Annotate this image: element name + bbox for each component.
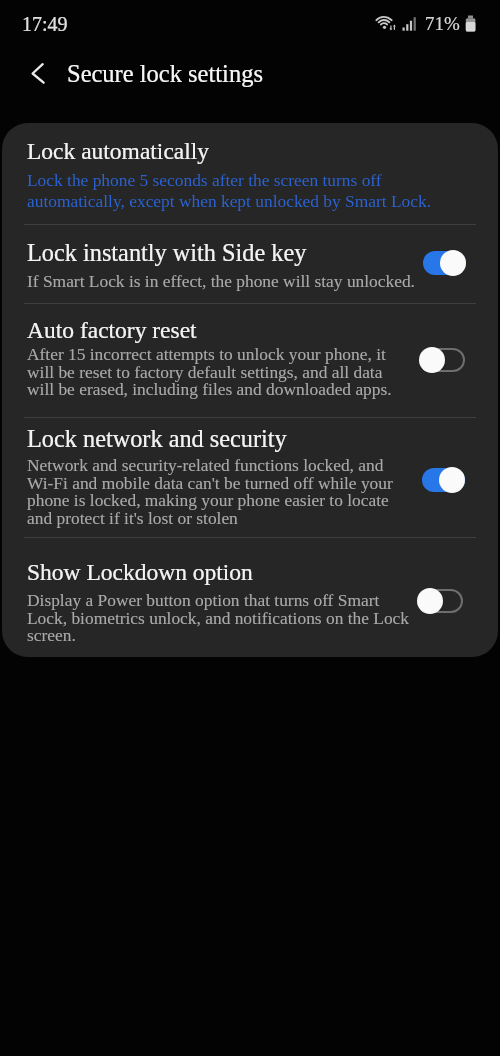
staticText: Display a Power button option that turns… bbox=[27, 590, 380, 609]
staticText: Lock network and security bbox=[27, 425, 287, 452]
staticText: screen. bbox=[27, 625, 76, 644]
staticText: will be erased, including files and down… bbox=[27, 379, 392, 398]
staticText: Show Lockdown option bbox=[27, 559, 253, 585]
staticText: After 15 incorrect attempts to unlock yo… bbox=[27, 344, 386, 363]
staticText: and protect if it's lost or stolen bbox=[27, 508, 238, 527]
staticText: phone is locked, making your phone easie… bbox=[27, 490, 389, 509]
staticText: 71% bbox=[425, 13, 460, 34]
staticText: 17:49 bbox=[22, 13, 68, 35]
staticText: Lock, biometrics unlock, and notificatio… bbox=[27, 608, 410, 627]
staticText: If Smart Lock is in effect, the phone wi… bbox=[27, 271, 415, 290]
staticText: Lock automatically bbox=[27, 138, 210, 164]
staticText: Auto factory reset bbox=[27, 317, 197, 343]
staticText: Network and security-related functions l… bbox=[27, 455, 384, 474]
staticText: Lock the phone 5 seconds after the scree… bbox=[27, 170, 382, 189]
staticText: Lock instantly with Side key bbox=[27, 239, 307, 266]
staticText: will be reset to factory default setting… bbox=[27, 362, 383, 381]
staticText: Wi-Fi and mobile data can't be turned of… bbox=[27, 473, 393, 492]
staticText: Secure lock settings bbox=[67, 60, 263, 87]
staticText: automatically, except when kept unlocked… bbox=[27, 191, 432, 210]
